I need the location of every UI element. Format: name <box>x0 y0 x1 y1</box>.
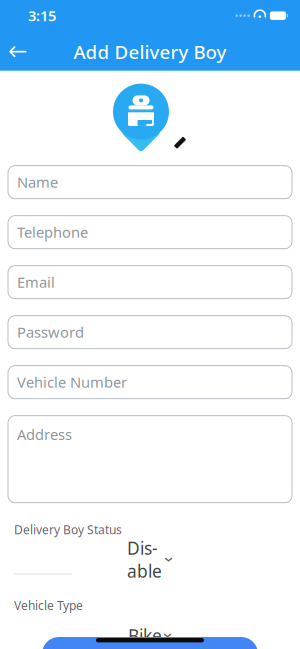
button[interactable]: Bike <box>14 625 286 649</box>
staticText: Bike <box>128 624 162 647</box>
staticText: Name <box>17 172 58 192</box>
staticText: Disable <box>127 537 162 583</box>
staticText: Vehicle Number <box>17 372 127 392</box>
staticText: 3:15 <box>28 6 56 25</box>
button[interactable]: Edit photo <box>113 81 187 151</box>
staticText: Vehicle Type <box>14 597 83 613</box>
button[interactable]: Disable <box>14 550 286 574</box>
button[interactable]: Back <box>0 35 36 69</box>
staticText: Address <box>17 425 72 444</box>
button[interactable]: Submit <box>42 637 258 649</box>
staticText: Delivery Boy Status <box>14 522 122 538</box>
staticText: Add Delivery Boy <box>73 39 226 64</box>
staticText: Telephone <box>17 222 88 242</box>
staticText: Email <box>17 272 55 292</box>
staticText: Password <box>17 322 84 342</box>
